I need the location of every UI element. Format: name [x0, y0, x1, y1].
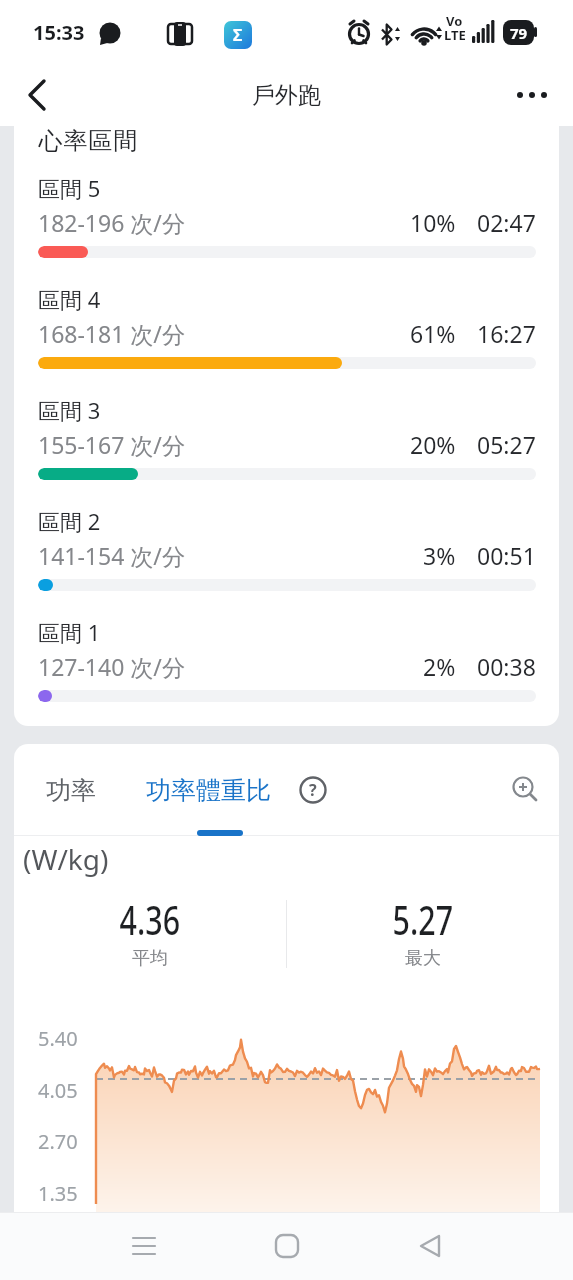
button[interactable] — [511, 775, 541, 805]
button[interactable] — [14, 71, 62, 119]
button[interactable] — [396, 1212, 464, 1280]
staticText: 05:27 — [477, 429, 536, 460]
staticText: LTE — [444, 26, 466, 44]
staticText: 61% — [410, 318, 456, 349]
staticText: 1.35 — [38, 1180, 78, 1207]
staticText: 02:47 — [477, 207, 536, 238]
staticText: 5.40 — [38, 1025, 78, 1052]
staticText: 2.70 — [38, 1128, 78, 1155]
staticText: 00:51 — [477, 540, 536, 571]
staticText: Vo — [446, 12, 463, 30]
staticText: 15:33 — [33, 19, 85, 46]
staticText: 4.36 — [120, 892, 180, 946]
staticText: 00:38 — [477, 651, 536, 682]
staticText: 4.05 — [38, 1077, 78, 1104]
staticText: 區間 2 — [38, 506, 101, 536]
button[interactable]: ? — [299, 776, 327, 804]
staticText: 5.27 — [393, 892, 453, 946]
staticText: ? — [309, 779, 317, 801]
staticText: 10% — [410, 207, 456, 238]
staticText: 區間 4 — [38, 284, 101, 314]
button[interactable]: 區間 1 — [38, 617, 536, 702]
staticText: 79 — [510, 23, 528, 43]
staticText: 3% — [423, 540, 456, 571]
staticText: 182-196 次/分 — [38, 207, 185, 238]
staticText: 平均 — [132, 947, 168, 970]
staticText: 127-140 次/分 — [38, 651, 185, 682]
staticText: 168-181 次/分 — [38, 318, 185, 349]
button[interactable] — [253, 1212, 321, 1280]
button[interactable]: 區間 3 — [38, 395, 536, 480]
button[interactable] — [110, 1212, 178, 1280]
staticText: 心率區間 — [38, 126, 138, 156]
staticText: 區間 3 — [38, 395, 101, 425]
staticText: 141-154 次/分 — [38, 540, 185, 571]
staticText: 區間 1 — [38, 617, 101, 647]
button[interactable] — [508, 71, 556, 119]
staticText: 20% — [410, 429, 456, 460]
button[interactable]: 區間 2 — [38, 506, 536, 591]
button[interactable]: 區間 5 — [38, 173, 536, 258]
staticText: 2% — [423, 651, 456, 682]
button[interactable]: 區間 4 — [38, 284, 536, 369]
staticText: (W/kg) — [23, 840, 109, 878]
staticText: 區間 5 — [38, 173, 101, 203]
staticText: 16:27 — [477, 318, 536, 349]
staticText: Σ — [233, 24, 243, 46]
staticText: 最大 — [405, 947, 441, 970]
button[interactable]: 功率體重比 — [146, 775, 271, 806]
staticText: 155-167 次/分 — [38, 429, 185, 460]
staticText: 戶外跑 — [252, 81, 321, 110]
button[interactable]: 功率 — [46, 775, 96, 806]
